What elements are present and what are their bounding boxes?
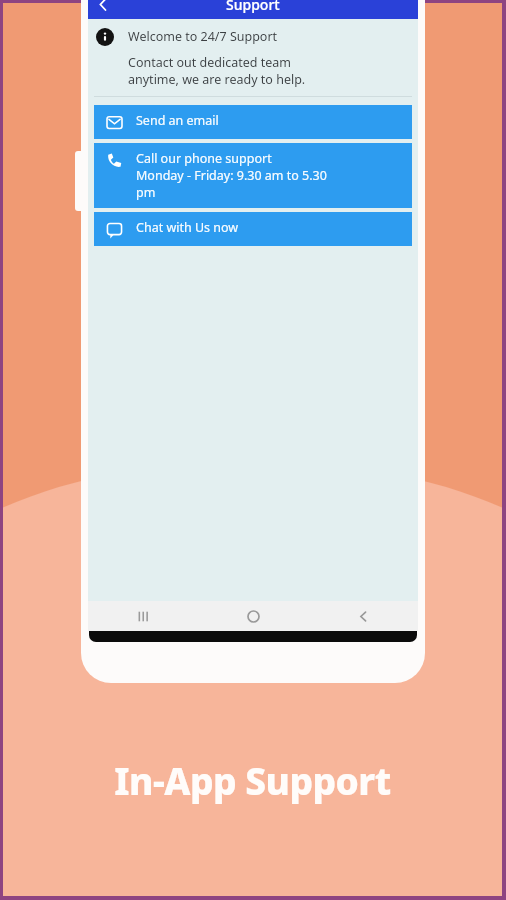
staticText: In-App Support (114, 755, 391, 805)
button[interactable]: Recent apps (88, 601, 198, 631)
staticText: Welcome to 24/7 Support (128, 28, 278, 45)
staticText: Call our phone support (136, 150, 272, 167)
staticText: Send an email (136, 112, 219, 129)
button[interactable]: Back (88, 0, 118, 19)
staticText: Support (226, 0, 280, 14)
button[interactable]: Back (308, 601, 418, 631)
button[interactable]: Call our phone support (94, 143, 412, 208)
button[interactable]: Chat with Us now (94, 212, 412, 246)
button[interactable]: Home (198, 601, 308, 631)
staticText: Monday - Friday: 9.30 am to 5.30 pm (136, 167, 327, 201)
staticText: Contact out dedicated team anytime, we a… (128, 54, 306, 87)
staticText: Chat with Us now (136, 219, 239, 236)
button[interactable]: Send an email (94, 105, 412, 139)
